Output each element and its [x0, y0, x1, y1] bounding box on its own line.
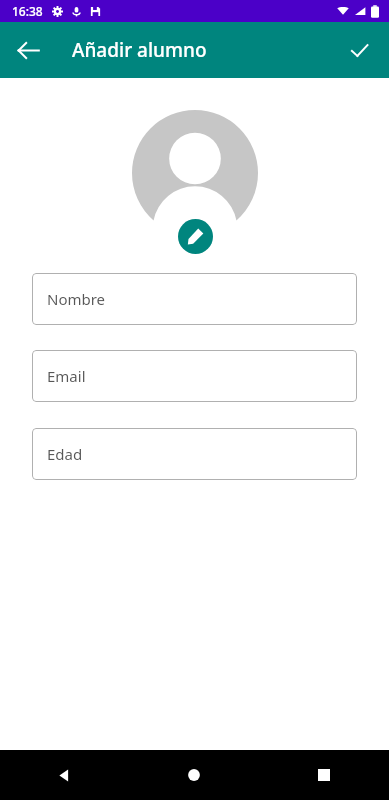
button[interactable]: Edad [32, 428, 357, 480]
staticText: Nombre [47, 289, 106, 309]
staticText: Añadir alumno [72, 37, 207, 63]
button[interactable]: Recent apps [259, 750, 389, 800]
button[interactable]: Back [8, 30, 48, 70]
button[interactable]: Email [32, 350, 357, 402]
staticText: Email [47, 366, 86, 386]
button[interactable]: Save [339, 30, 379, 70]
staticText: 16:38 [12, 3, 43, 19]
button[interactable]: Home [129, 750, 259, 800]
staticText: Edad [47, 444, 83, 464]
button[interactable]: Nombre [32, 273, 357, 325]
button[interactable]: Edit photo [178, 219, 213, 254]
button[interactable]: Back [0, 750, 129, 800]
